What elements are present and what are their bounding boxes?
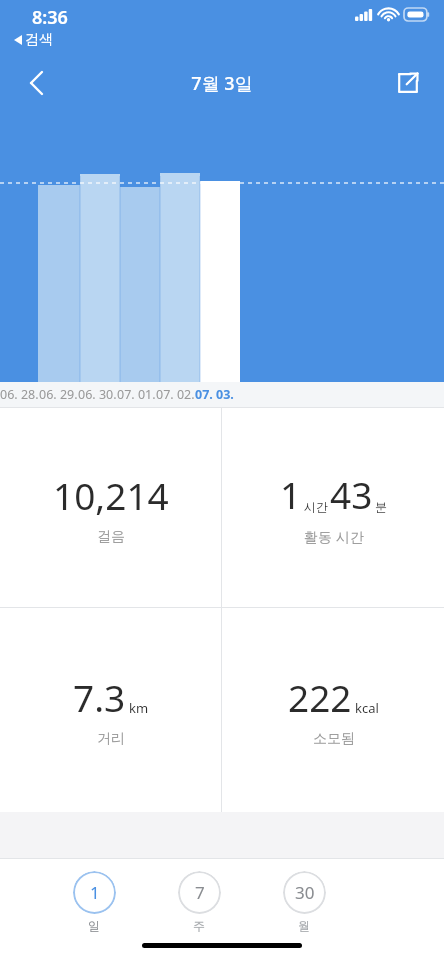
- staticText: 07. 03.: [195, 386, 234, 403]
- staticText: 7: [195, 881, 205, 904]
- staticText: 소모됨: [313, 730, 355, 748]
- staticText: 거리: [97, 730, 125, 748]
- staticText: 걸음: [97, 528, 125, 546]
- button[interactable]: Back: [14, 61, 58, 105]
- staticText: 06. 30.: [78, 386, 117, 403]
- button[interactable]: 222: [222, 608, 444, 812]
- staticText: 06. 28.: [0, 386, 39, 403]
- staticText: 활동 시간: [304, 527, 364, 546]
- button[interactable]: 7.3: [0, 608, 221, 812]
- staticText: 06. 29.: [39, 386, 78, 403]
- staticText: 8:36: [32, 5, 68, 30]
- staticText: 1: [90, 881, 100, 904]
- staticText: 일: [88, 918, 100, 933]
- staticText: 시간: [304, 499, 328, 514]
- staticText: 10,214: [53, 470, 169, 520]
- button[interactable]: 1: [72, 871, 116, 933]
- staticText: 07. 02.: [156, 386, 195, 403]
- staticText: 43: [330, 469, 373, 519]
- button[interactable]: 30: [282, 871, 326, 933]
- staticText: 1: [280, 469, 302, 519]
- staticText: 7월 3일: [58, 71, 386, 96]
- button[interactable]: Share: [386, 61, 430, 105]
- staticText: 222: [288, 672, 352, 722]
- staticText: 월: [298, 918, 310, 933]
- staticText: 분: [375, 499, 387, 514]
- staticText: 검색: [25, 31, 53, 49]
- staticText: 30: [295, 881, 315, 904]
- staticText: 07. 01.: [117, 386, 156, 403]
- button[interactable]: 1: [222, 408, 444, 607]
- staticText: 7.3: [73, 672, 126, 722]
- button[interactable]: 10,214: [0, 408, 221, 607]
- staticText: km: [129, 699, 149, 717]
- staticText: kcal: [355, 699, 379, 717]
- staticText: 주: [193, 918, 205, 933]
- button[interactable]: 7: [177, 871, 221, 933]
